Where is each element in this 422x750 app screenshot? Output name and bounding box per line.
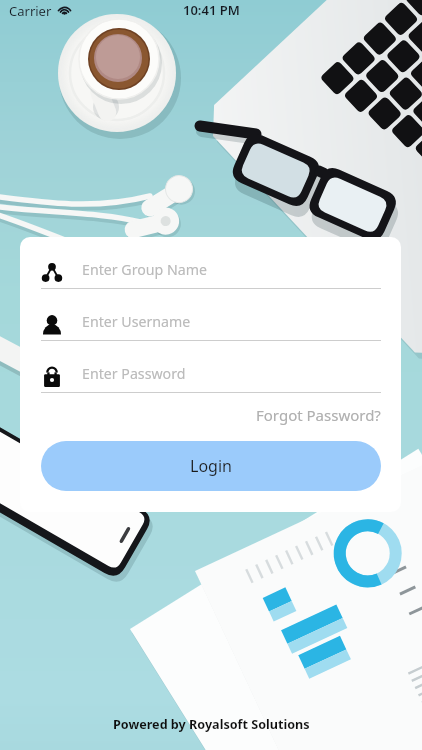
staticText: 10:41 PM xyxy=(183,1,240,19)
staticText: Carrier xyxy=(9,2,52,20)
button[interactable]: Enter Group Name xyxy=(41,249,381,289)
staticText: Forgot Password? xyxy=(256,405,381,425)
button[interactable]: Enter Username xyxy=(41,301,381,341)
staticText: Powered by Royalsoft Solutions xyxy=(113,716,310,733)
button[interactable]: Forgot Password? xyxy=(200,402,381,428)
staticText: Enter Group Name xyxy=(82,260,208,279)
staticText: Enter Username xyxy=(82,312,191,331)
staticText: Enter Password xyxy=(82,364,186,383)
staticText: Login xyxy=(190,455,232,477)
button[interactable]: Enter Password xyxy=(41,353,381,393)
button[interactable]: Login xyxy=(41,441,381,491)
